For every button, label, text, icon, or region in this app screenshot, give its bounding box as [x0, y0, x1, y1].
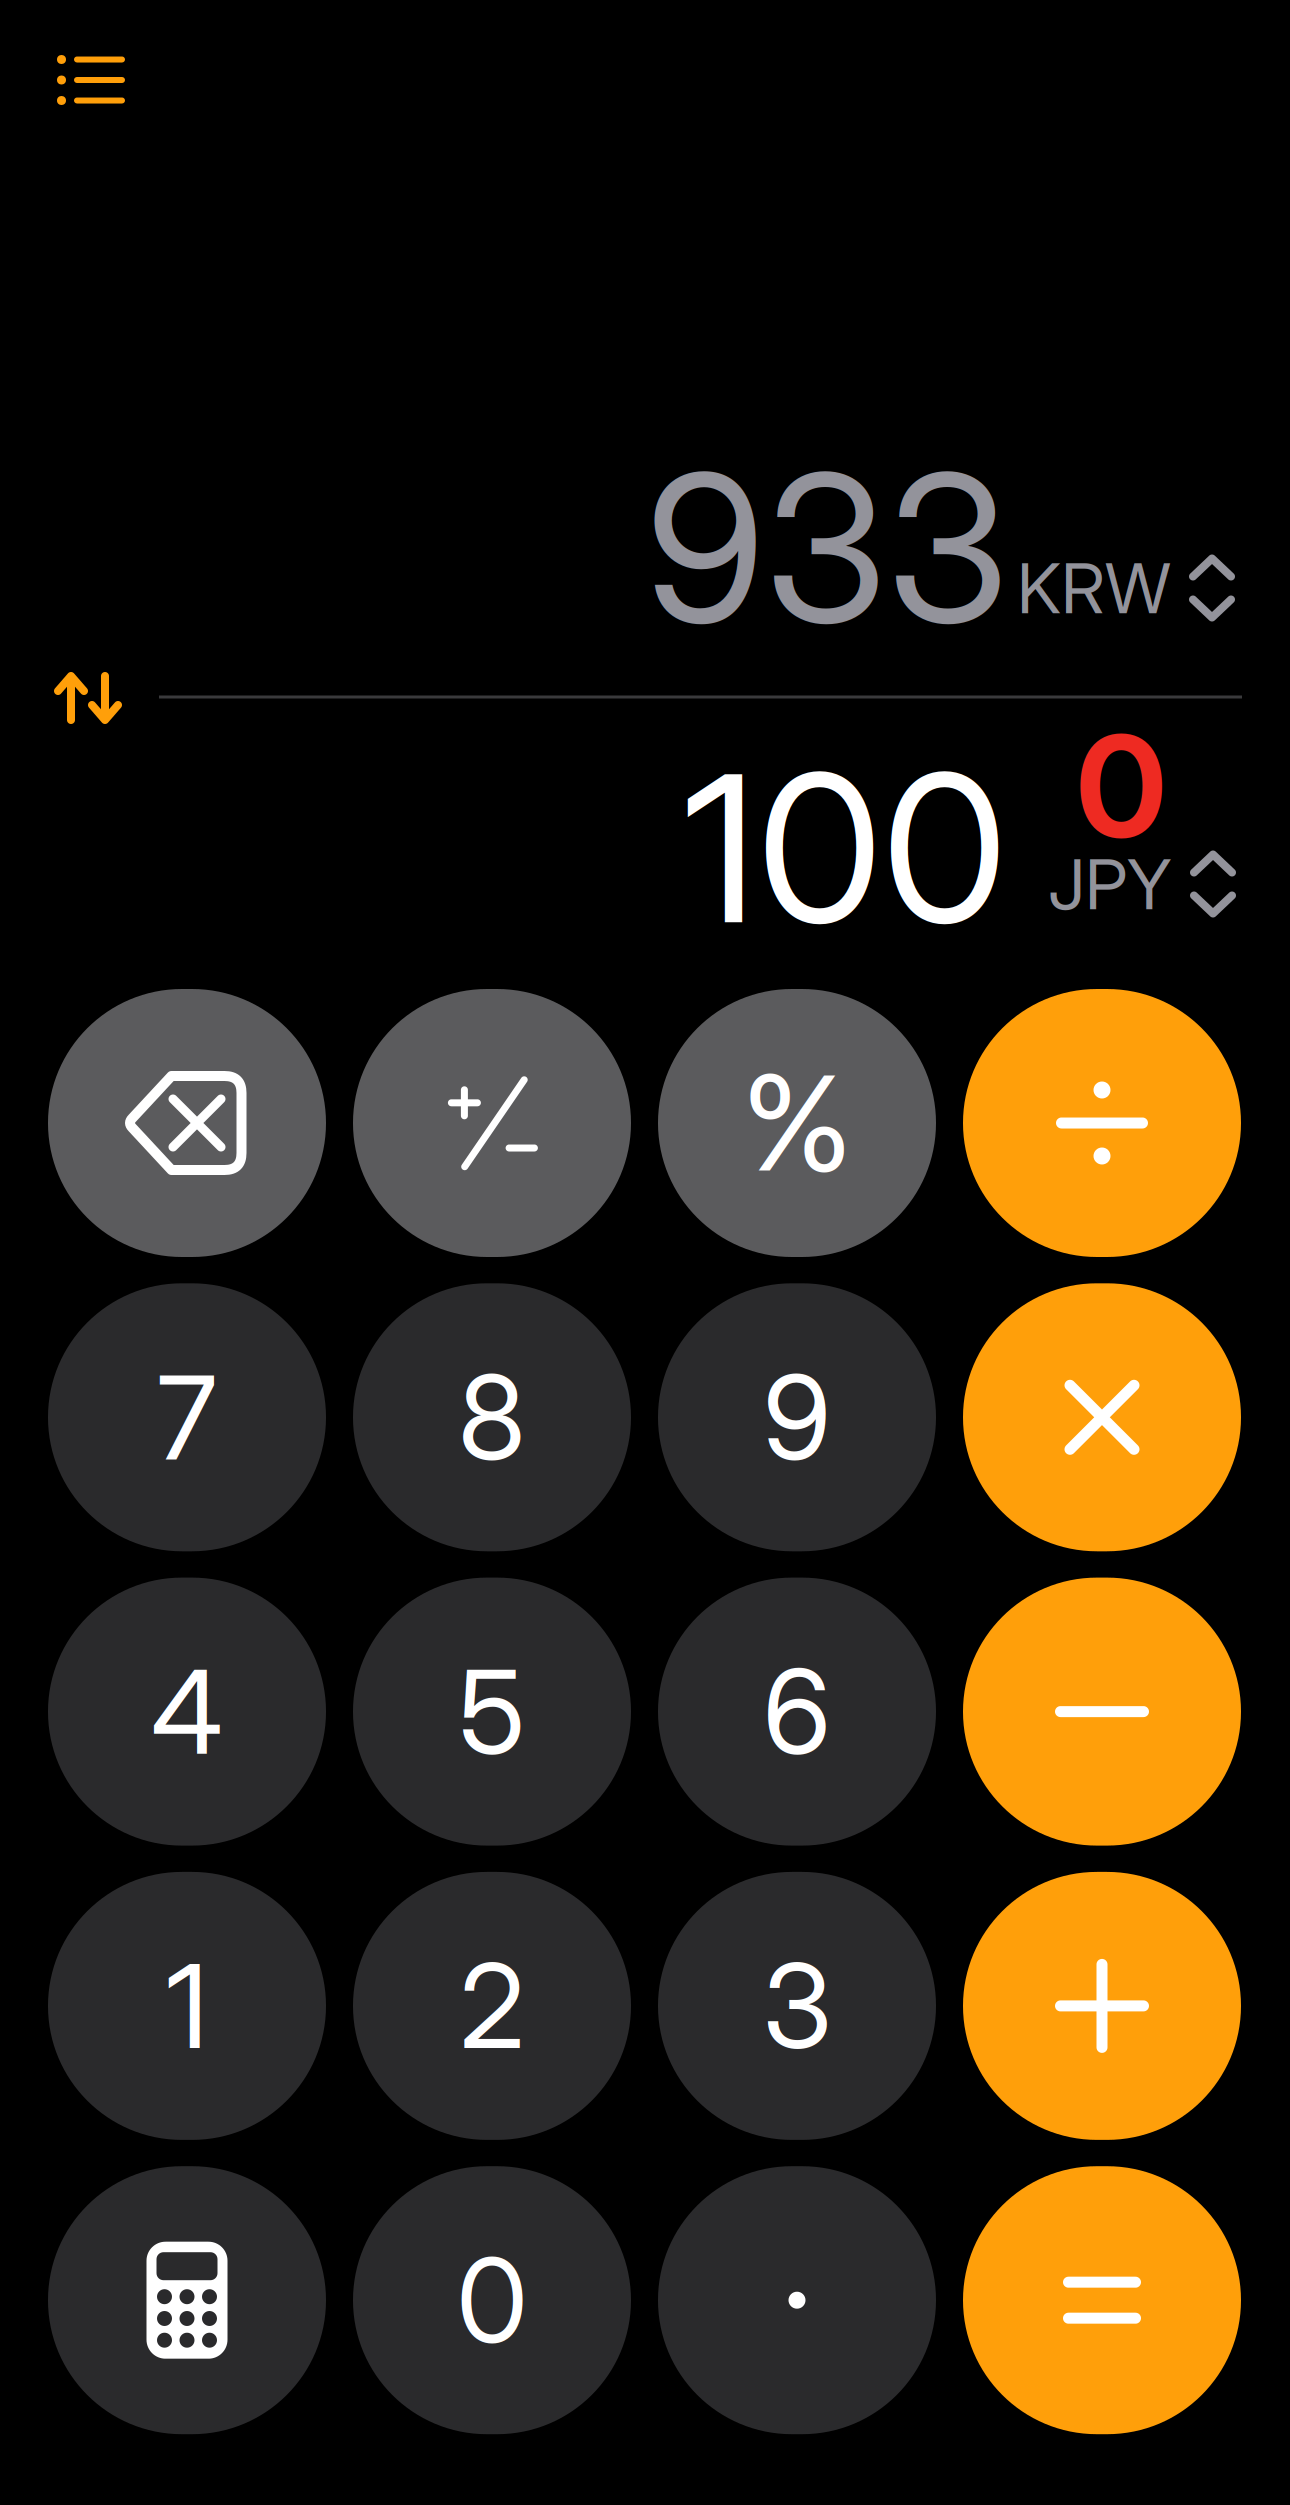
staticText: 9: [763, 1347, 831, 1487]
button[interactable]: [963, 1578, 1241, 1846]
button[interactable]: %: [658, 989, 936, 1257]
staticText: 7: [157, 1347, 217, 1487]
staticText: 4: [151, 1641, 223, 1782]
staticText: 8: [458, 1347, 526, 1487]
button[interactable]: [658, 2166, 936, 2434]
button[interactable]: 0: [353, 2166, 631, 2434]
staticText: 6: [763, 1641, 831, 1782]
button[interactable]: Change output currency: [1017, 532, 1235, 644]
staticText: 100: [683, 725, 1007, 971]
button[interactable]: [48, 2166, 326, 2434]
button[interactable]: Conversion history: [32, 30, 150, 130]
staticText: 2: [459, 1936, 524, 2076]
staticText: 5: [458, 1641, 525, 1782]
staticText: 3: [762, 1936, 831, 2076]
button[interactable]: 4: [48, 1578, 326, 1846]
staticText: %: [742, 1044, 852, 1202]
button[interactable]: Change input currency: [1048, 828, 1236, 940]
button[interactable]: 7: [48, 1283, 326, 1551]
button[interactable]: [963, 1283, 1241, 1551]
button[interactable]: 6: [658, 1578, 936, 1846]
button[interactable]: 2: [353, 1872, 631, 2140]
staticText: JPY: [1048, 842, 1172, 926]
button[interactable]: 8: [353, 1283, 631, 1551]
button[interactable]: [963, 2166, 1241, 2434]
staticText: KRW: [1017, 546, 1171, 630]
button[interactable]: [963, 989, 1241, 1257]
button[interactable]: 5: [353, 1578, 631, 1846]
staticText: 933: [645, 425, 1008, 671]
staticText: 0: [1076, 702, 1166, 870]
button[interactable]: 1: [48, 1872, 326, 2140]
button[interactable]: Swap currencies: [38, 653, 138, 743]
staticText: 0: [456, 2230, 527, 2370]
button[interactable]: 3: [658, 1872, 936, 2140]
button[interactable]: [963, 1872, 1241, 2140]
button[interactable]: [48, 989, 326, 1257]
staticText: 1: [166, 1936, 208, 2076]
button[interactable]: 9: [658, 1283, 936, 1551]
button[interactable]: [353, 989, 631, 1257]
